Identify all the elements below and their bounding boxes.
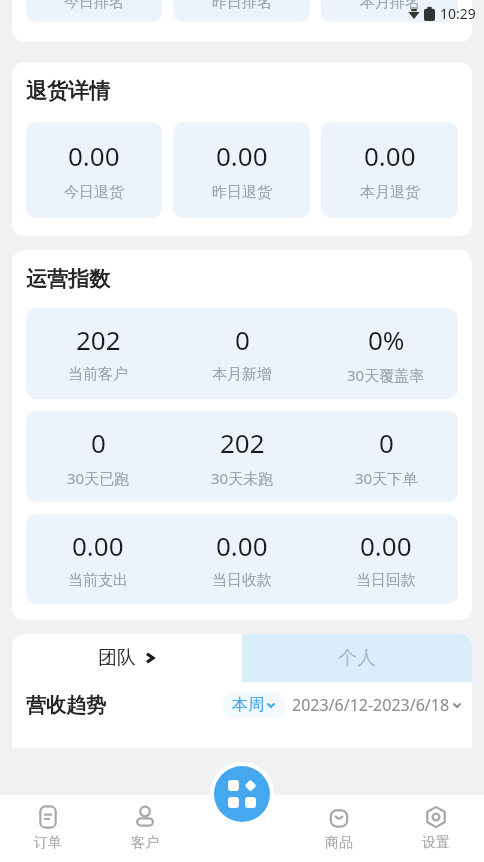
staticText: 订单 bbox=[34, 834, 62, 852]
staticText: 客户 bbox=[131, 834, 159, 852]
staticText: 今日退货 bbox=[64, 183, 124, 202]
staticText: 0 bbox=[379, 425, 394, 460]
staticText: 0.00 bbox=[216, 138, 268, 173]
staticText: 30天下单 bbox=[355, 468, 418, 488]
staticText: 202 bbox=[220, 425, 265, 460]
staticText: 0 bbox=[91, 425, 106, 460]
staticText: 0.00 bbox=[360, 528, 412, 563]
staticText: 当前客户 bbox=[68, 365, 128, 384]
staticText: 202 bbox=[76, 322, 121, 357]
button[interactable]: 设置 bbox=[387, 795, 484, 862]
staticText: 昨日退货 bbox=[212, 183, 272, 202]
button[interactable]: 202 bbox=[26, 308, 458, 399]
staticText: 营收趋势 bbox=[26, 693, 106, 718]
staticText: 30天已跑 bbox=[67, 468, 130, 488]
button[interactable]: 应用 bbox=[214, 766, 270, 822]
staticText: 30天覆盖率 bbox=[347, 365, 425, 385]
button[interactable]: 商品 bbox=[290, 795, 387, 862]
staticText: 30天未跑 bbox=[211, 468, 274, 488]
staticText: 个人 bbox=[338, 646, 376, 670]
staticText: 0.00 bbox=[364, 138, 416, 173]
button[interactable]: 团队 bbox=[12, 634, 242, 682]
staticText: 团队 bbox=[98, 646, 136, 670]
staticText: 0 bbox=[235, 322, 250, 357]
staticText: 0.00 bbox=[72, 528, 124, 563]
button[interactable]: 0.00 bbox=[321, 122, 458, 218]
button[interactable]: 今日排名 bbox=[26, 0, 162, 22]
button[interactable]: 0.00 bbox=[26, 122, 162, 218]
button[interactable]: 0 bbox=[26, 411, 458, 502]
staticText: 运营指数 bbox=[26, 266, 110, 292]
staticText: 2023/6/12-2023/6/18 bbox=[292, 694, 450, 716]
button[interactable]: 0.00 bbox=[173, 122, 310, 218]
staticText: 今日排名 bbox=[64, 0, 124, 12]
staticText: 10:29 bbox=[440, 4, 476, 23]
staticText: 退货详情 bbox=[26, 78, 110, 104]
staticText: 本月排名 bbox=[360, 0, 420, 12]
staticText: 本月退货 bbox=[360, 183, 420, 202]
button[interactable]: 本月排名 bbox=[321, 0, 458, 22]
button[interactable]: 订单 bbox=[0, 795, 96, 862]
staticText: 0.00 bbox=[216, 528, 268, 563]
staticText: 商品 bbox=[325, 834, 353, 852]
staticText: 设置 bbox=[422, 834, 450, 852]
staticText: 0.00 bbox=[68, 138, 120, 173]
button[interactable]: 客户 bbox=[96, 795, 193, 862]
button[interactable]: 0.00 bbox=[26, 514, 458, 604]
staticText: 本周 bbox=[232, 695, 264, 715]
staticText: 当日收款 bbox=[212, 571, 272, 590]
staticText: 当日回款 bbox=[356, 571, 416, 590]
staticText: 本月新增 bbox=[212, 365, 272, 384]
staticText: 昨日排名 bbox=[212, 0, 272, 12]
staticText: 0% bbox=[368, 322, 405, 357]
button[interactable]: 个人 bbox=[242, 634, 472, 682]
button[interactable]: 昨日排名 bbox=[173, 0, 310, 22]
button[interactable]: 本周 bbox=[222, 692, 286, 718]
staticText: 当前支出 bbox=[68, 571, 128, 590]
